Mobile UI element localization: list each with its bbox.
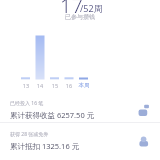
staticText: 累计获得收益 6257.50 元 <box>10 110 95 120</box>
staticText: 累计抵扣 1325.16 元 <box>10 141 80 151</box>
staticText: 已参与攒钱 <box>0 13 160 21</box>
staticText: 14 <box>31 82 49 89</box>
staticText: 16 <box>60 82 78 89</box>
staticText: 获得 28 张减免券 <box>10 131 49 138</box>
staticText: 本周 <box>75 82 93 89</box>
button[interactable]: 获得 28 张减免券 <box>0 127 160 155</box>
staticText: 17 <box>60 0 83 19</box>
staticText: 已经投入 16 笔 <box>10 100 44 107</box>
staticText: 13 <box>17 82 35 89</box>
staticText: 15 <box>46 82 64 89</box>
staticText: /52周 <box>80 2 103 14</box>
button[interactable]: 已经投入 16 笔 <box>0 96 160 124</box>
